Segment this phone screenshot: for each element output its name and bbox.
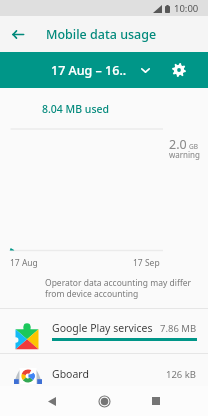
staticText: Google Play services (52, 321, 153, 335)
staticText: 7.86 MB (160, 322, 197, 335)
staticText: 8.04 MB used (42, 102, 110, 116)
staticText: Operator data accounting may differ from… (45, 277, 192, 299)
button[interactable]: Gboard (0, 354, 208, 398)
staticText: 10:00 (174, 2, 199, 15)
button[interactable]: Settings (168, 59, 190, 81)
staticText: warning (169, 149, 200, 160)
staticText: GB (189, 142, 198, 151)
button[interactable]: Home (92, 389, 116, 413)
staticText: 2.0 (169, 136, 187, 153)
staticText: Gboard (52, 367, 89, 381)
staticText: 17 Sep (133, 257, 160, 269)
button[interactable]: 17 Aug – 16.. (47, 58, 154, 83)
staticText: 17 Aug – 16.. (51, 62, 127, 79)
staticText: Mobile data usage (46, 26, 157, 43)
staticText: 126 kB (166, 368, 197, 381)
button[interactable]: Back (40, 389, 64, 413)
button[interactable]: Recent apps (144, 389, 168, 413)
staticText: 17 Aug (10, 257, 38, 269)
button[interactable]: Navigate up (6, 22, 30, 46)
button[interactable]: Google Play services (0, 309, 208, 353)
